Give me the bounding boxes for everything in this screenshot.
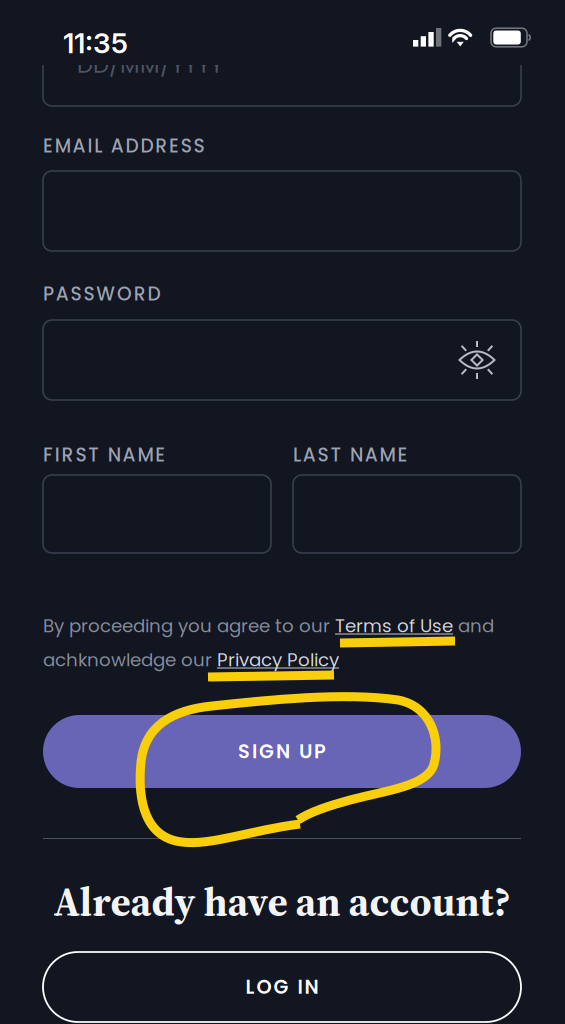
staticText: EMAIL ADDRESS — [43, 133, 205, 159]
staticText: LOG IN — [245, 973, 318, 1001]
staticText: PASSWORD — [43, 281, 161, 307]
staticText: FIRST NAME — [43, 442, 165, 468]
staticText: DD/MM/YYYY — [77, 49, 223, 81]
staticText: Privacy Policy — [217, 647, 339, 673]
button[interactable]: Terms of Use — [335, 613, 453, 639]
staticText: By proceeding you agree to our — [43, 613, 335, 639]
staticText: 11:35 — [63, 26, 128, 60]
button[interactable]: SIGN UP — [43, 715, 521, 788]
staticText: and — [453, 613, 494, 639]
staticText: achknowledge our — [43, 647, 217, 673]
staticText: SIGN UP — [238, 738, 326, 765]
staticText: Already have an account? — [53, 874, 510, 929]
button[interactable]: LOG IN — [43, 952, 521, 1022]
staticText: Terms of Use — [335, 613, 453, 639]
button[interactable]: Show password — [43, 320, 521, 400]
button[interactable]: Privacy Policy — [217, 647, 339, 673]
staticText: LAST NAME — [293, 442, 407, 468]
